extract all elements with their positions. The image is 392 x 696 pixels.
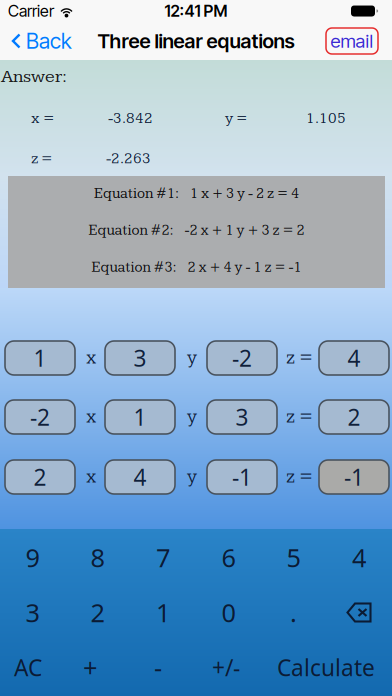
button[interactable]: -1: [319, 460, 389, 494]
button[interactable]: -2: [5, 400, 75, 434]
staticText: z =: [286, 466, 313, 488]
staticText: -2: [232, 343, 252, 373]
staticText: 1 x + 3 y - 2 z = 4: [190, 185, 299, 202]
staticText: 2 x + 4 y - 1 z = -1: [187, 259, 301, 276]
staticText: AC: [14, 652, 42, 682]
button[interactable]: email: [326, 28, 392, 54]
button[interactable]: Calculate: [260, 640, 392, 695]
staticText: x =: [31, 109, 55, 128]
staticText: 2: [33, 462, 46, 492]
button[interactable]: 0: [196, 585, 261, 640]
staticText: 3: [235, 402, 248, 432]
button[interactable]: 4: [319, 341, 389, 375]
button[interactable]: 6: [196, 530, 261, 585]
staticText: Carrier: [8, 1, 54, 21]
staticText: z =: [31, 150, 53, 168]
staticText: 0: [221, 596, 235, 629]
staticText: x: [86, 466, 96, 488]
staticText: 1: [133, 402, 146, 432]
staticText: 9: [25, 541, 39, 574]
staticText: 3: [133, 343, 146, 373]
staticText: .: [290, 596, 297, 629]
staticText: +/-: [212, 652, 240, 682]
button[interactable]: .: [261, 585, 326, 640]
staticText: y: [187, 466, 197, 488]
button[interactable]: Delete: [326, 585, 392, 640]
button[interactable]: 3: [207, 400, 277, 434]
staticText: -3.842: [108, 109, 153, 128]
button[interactable]: 1: [5, 341, 75, 375]
staticText: y =: [225, 109, 248, 128]
staticText: 4: [352, 541, 366, 574]
staticText: x: [86, 347, 96, 369]
button[interactable]: 1: [130, 585, 196, 640]
staticText: 4: [133, 462, 146, 492]
staticText: Three linear equations: [97, 29, 294, 53]
staticText: x: [86, 406, 96, 428]
staticText: 1: [33, 343, 46, 373]
staticText: -1: [344, 462, 364, 492]
staticText: 3: [25, 596, 39, 629]
button[interactable]: -1: [207, 460, 277, 494]
staticText: 1.105: [306, 109, 346, 128]
button[interactable]: 5: [261, 530, 326, 585]
staticText: email: [330, 30, 373, 52]
staticText: y: [187, 347, 197, 369]
staticText: 12:41 PM: [164, 1, 227, 21]
staticText: Equation #2:: [88, 222, 173, 239]
staticText: -2.263: [106, 150, 151, 168]
staticText: Answer:: [1, 66, 67, 87]
button[interactable]: 3: [105, 341, 175, 375]
staticText: z =: [286, 406, 313, 428]
staticText: 2: [347, 402, 360, 432]
staticText: -: [154, 651, 162, 684]
staticText: 2: [90, 596, 104, 629]
staticText: z =: [286, 347, 313, 369]
staticText: -2 x + 1 y + 3 z = 2: [184, 222, 304, 239]
staticText: Back: [26, 28, 72, 54]
button[interactable]: 4: [105, 460, 175, 494]
staticText: -2: [30, 402, 50, 432]
button[interactable]: 2: [65, 585, 130, 640]
button[interactable]: -2: [207, 341, 277, 375]
button[interactable]: 7: [130, 530, 196, 585]
button[interactable]: 3: [0, 585, 65, 640]
button[interactable]: +/-: [192, 640, 260, 695]
staticText: Equation #3:: [91, 259, 176, 276]
button[interactable]: -: [124, 640, 192, 695]
staticText: +: [83, 651, 97, 684]
button[interactable]: 9: [0, 530, 65, 585]
staticText: 5: [286, 541, 300, 574]
staticText: -1: [232, 462, 252, 492]
button[interactable]: AC: [0, 640, 56, 695]
staticText: Equation #1:: [94, 185, 179, 202]
staticText: 7: [156, 541, 170, 574]
staticText: 1: [156, 596, 170, 629]
button[interactable]: 1: [105, 400, 175, 434]
button[interactable]: Back: [0, 22, 72, 60]
button[interactable]: 2: [319, 400, 389, 434]
staticText: 8: [90, 541, 104, 574]
staticText: y: [187, 406, 197, 428]
button[interactable]: 8: [65, 530, 130, 585]
staticText: Calculate: [277, 652, 375, 682]
staticText: 4: [347, 343, 360, 373]
button[interactable]: 2: [5, 460, 75, 494]
staticText: 6: [221, 541, 235, 574]
button[interactable]: 4: [326, 530, 392, 585]
button[interactable]: +: [56, 640, 124, 695]
